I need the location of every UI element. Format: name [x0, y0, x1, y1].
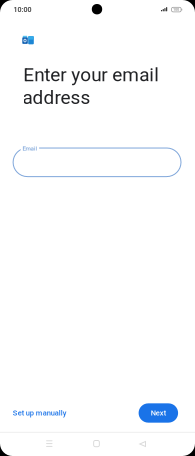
staticText: Next	[151, 409, 166, 417]
button[interactable]: Home	[89, 437, 103, 450]
staticText: address	[22, 86, 90, 109]
staticText: Email	[22, 145, 37, 152]
staticText: Enter your email	[23, 64, 159, 86]
button[interactable]: Set up manually	[5, 403, 74, 423]
button[interactable]: Next	[139, 403, 178, 423]
staticText: 10:00	[14, 5, 32, 14]
button[interactable]: Back	[136, 437, 150, 450]
button[interactable]: Recent apps	[42, 437, 56, 450]
staticText: 100	[173, 8, 179, 11]
staticText: Set up manually	[13, 409, 67, 417]
